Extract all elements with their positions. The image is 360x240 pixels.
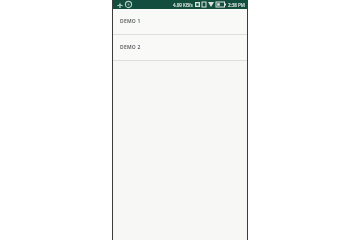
button[interactable]: DEMO 1 xyxy=(113,9,247,34)
staticText: DEMO 1 xyxy=(120,18,141,25)
staticText: 2:38 PM xyxy=(228,2,245,8)
staticText: DEMO 2 xyxy=(120,44,141,51)
staticText: 4.09 KB/s xyxy=(173,2,193,8)
button[interactable]: DEMO 2 xyxy=(113,35,247,60)
